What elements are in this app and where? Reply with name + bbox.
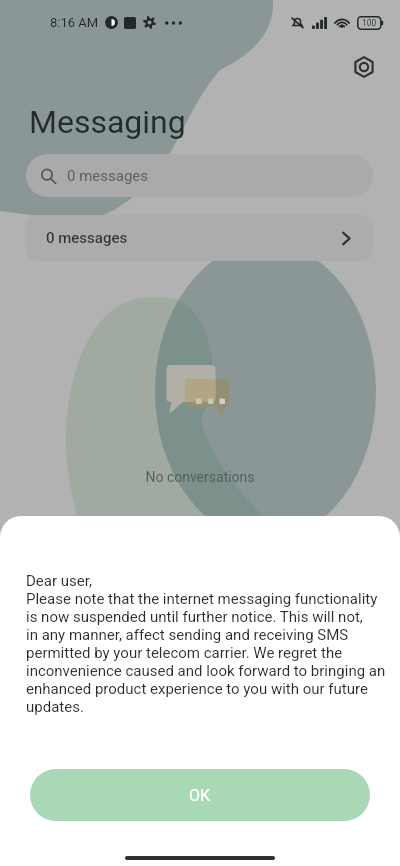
staticText: 100 (362, 18, 377, 28)
staticText: 0 messages (67, 167, 149, 185)
staticText: 8:16 AM (50, 15, 99, 30)
button[interactable]: 0 messages (26, 215, 373, 261)
button[interactable]: OK (30, 769, 370, 821)
staticText: 0 messages (46, 229, 128, 247)
staticText: No conversations (0, 469, 400, 485)
button[interactable]: Settings (346, 49, 381, 84)
staticText: OK (189, 786, 211, 805)
staticText: Dear user, Please note that the internet… (26, 572, 396, 716)
staticText: Messaging (29, 103, 186, 141)
button[interactable]: 0 messages (26, 154, 373, 197)
